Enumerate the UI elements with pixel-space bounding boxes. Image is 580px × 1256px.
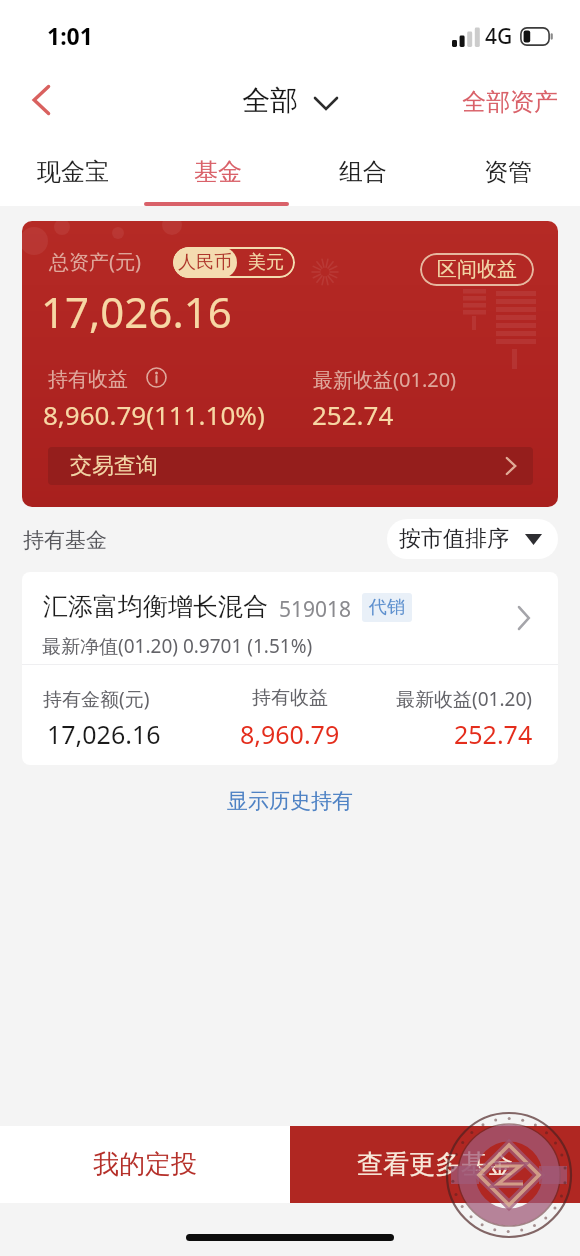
button[interactable]: 全部 xyxy=(236,75,344,126)
button[interactable] xyxy=(22,572,558,664)
staticText: 区间收益 xyxy=(437,257,517,282)
button[interactable]: 查看更多基金 xyxy=(290,1126,580,1203)
button[interactable]: 基金 xyxy=(145,138,290,206)
button[interactable]: 美元 xyxy=(237,247,295,278)
staticText: 现金宝 xyxy=(37,157,109,187)
staticText: 最新收益(01.20) xyxy=(313,366,457,393)
button[interactable]: 区间收益 xyxy=(420,253,534,286)
staticText: 我的定投 xyxy=(93,1148,197,1181)
button[interactable]: 按市值排序 xyxy=(387,519,558,559)
staticText: 交易查询 xyxy=(70,452,158,480)
staticText: 519018 xyxy=(279,595,352,624)
staticText: 查看更多基金 xyxy=(357,1148,513,1181)
button[interactable]: 显示历史持有 xyxy=(0,779,580,823)
staticText: 最新收益(01.20) xyxy=(396,686,532,712)
staticText: 全部 xyxy=(242,83,298,118)
button[interactable]: 交易查询 xyxy=(48,447,533,485)
staticText: 组合 xyxy=(339,157,387,187)
staticText: 8,960.79 xyxy=(240,717,340,751)
staticText: 1:01 xyxy=(47,20,93,51)
staticText: 人民币 xyxy=(178,251,232,274)
staticText: 持有金额(元) xyxy=(43,686,150,712)
staticText: 代销 xyxy=(369,596,405,619)
button[interactable]: 资管 xyxy=(435,138,580,206)
staticText: 252.74 xyxy=(454,717,533,751)
staticText: 美元 xyxy=(248,251,284,274)
button[interactable]: Info xyxy=(146,367,167,388)
staticText: 17,026.16 xyxy=(47,717,161,751)
button[interactable]: 全部资产 xyxy=(440,75,580,125)
button[interactable]: 人民币 xyxy=(173,247,237,278)
button[interactable]: 我的定投 xyxy=(0,1126,290,1203)
staticText: 资管 xyxy=(484,157,532,187)
staticText: 4G xyxy=(485,22,513,51)
button[interactable]: 现金宝 xyxy=(0,138,145,206)
staticText: 总资产(元) xyxy=(49,248,141,275)
staticText: 最新净值(01.20) 0.9701 (1.51%) xyxy=(42,633,313,659)
staticText: 持有收益 xyxy=(48,367,128,392)
staticText: 持有收益 xyxy=(252,686,328,710)
staticText: 汇添富均衡增长混合 xyxy=(43,591,268,622)
staticText: 全部资产 xyxy=(462,87,558,117)
staticText: 8,960.79(111.10%) xyxy=(43,397,265,432)
button[interactable]: 组合 xyxy=(290,138,435,206)
staticText: 252.74 xyxy=(312,397,394,432)
staticText: 持有基金 xyxy=(23,527,107,553)
staticText: 按市值排序 xyxy=(399,525,509,553)
button[interactable]: Back xyxy=(12,71,70,129)
staticText: 显示历史持有 xyxy=(227,788,353,814)
staticText: 基金 xyxy=(194,157,242,187)
staticText: 17,026.16 xyxy=(41,283,232,340)
